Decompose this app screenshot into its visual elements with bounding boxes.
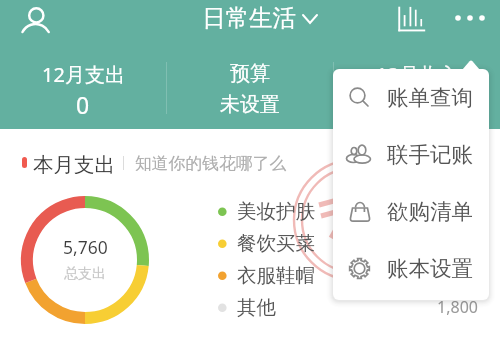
button[interactable]: 欲购清单 bbox=[333, 183, 489, 240]
staticText: 日常生活 bbox=[202, 3, 296, 33]
button[interactable]: More options bbox=[448, 4, 492, 32]
staticText: 美妆护肤 bbox=[237, 199, 315, 224]
staticText: 总支出 bbox=[64, 265, 106, 283]
button[interactable]: 餐饮买菜 bbox=[218, 229, 478, 257]
button[interactable]: Statistics bbox=[394, 3, 430, 36]
staticText: 其他 bbox=[237, 295, 276, 320]
staticText: 预算 bbox=[230, 61, 270, 86]
staticText: 1,800 bbox=[437, 264, 478, 286]
staticText: 餐饮买菜 bbox=[237, 231, 315, 256]
button[interactable]: 账单查询 bbox=[333, 69, 489, 126]
button[interactable]: Account bbox=[18, 0, 54, 36]
staticText: 账本设置 bbox=[387, 255, 473, 282]
button[interactable]: 12月支出 bbox=[0, 61, 166, 120]
button[interactable]: 联手记账 bbox=[333, 126, 489, 183]
staticText: 未设置 bbox=[220, 92, 280, 117]
button[interactable]: 12月收入 bbox=[334, 61, 500, 120]
staticText: 0 bbox=[410, 89, 424, 120]
staticText: 12月收入 bbox=[376, 61, 459, 88]
button[interactable]: 预算 bbox=[167, 61, 333, 117]
staticText: 联手记账 bbox=[387, 141, 473, 168]
staticText: 本月支出 bbox=[33, 152, 115, 174]
staticText: 2,400 bbox=[437, 200, 478, 222]
staticText: 衣服鞋帽 bbox=[237, 263, 315, 288]
staticText: 欲购清单 bbox=[387, 198, 473, 225]
staticText: 知道你的钱花哪了么 bbox=[135, 153, 287, 174]
button[interactable]: 其他 bbox=[218, 293, 478, 321]
staticText: 0 bbox=[76, 89, 90, 120]
staticText: 12月支出 bbox=[42, 61, 125, 88]
button[interactable]: 账本设置 bbox=[333, 240, 489, 297]
button[interactable]: 日常生活 bbox=[202, 3, 318, 33]
staticText: 1,800 bbox=[437, 296, 478, 318]
button[interactable]: 美妆护肤 bbox=[218, 197, 478, 225]
staticText: 5,760 bbox=[63, 235, 108, 259]
button[interactable]: 衣服鞋帽 bbox=[218, 261, 478, 289]
staticText: 账单查询 bbox=[387, 84, 473, 111]
